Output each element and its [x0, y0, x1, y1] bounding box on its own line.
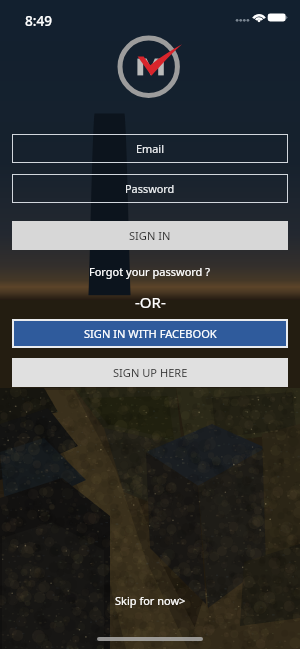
button[interactable]: Email: [12, 134, 288, 163]
button[interactable]: SIGN IN: [12, 221, 288, 250]
staticText: SIGN IN WITH FACEBOOK: [84, 326, 217, 341]
staticText: Email: [136, 141, 164, 156]
staticText: SIGN IN: [129, 228, 171, 243]
staticText: SIGN UP HERE: [113, 365, 188, 380]
staticText: Forgot your password ?: [89, 264, 211, 279]
staticText: -OR-: [135, 292, 166, 312]
staticText: Skip for now>: [115, 593, 186, 608]
button[interactable]: Password: [12, 174, 288, 203]
button[interactable]: Skip for now>: [0, 589, 300, 611]
staticText: 8:49: [25, 11, 53, 30]
button[interactable]: SIGN UP HERE: [12, 358, 288, 387]
button[interactable]: SIGN IN WITH FACEBOOK: [12, 319, 288, 348]
staticText: Password: [125, 181, 175, 196]
button[interactable]: Forgot your password ?: [0, 260, 300, 282]
